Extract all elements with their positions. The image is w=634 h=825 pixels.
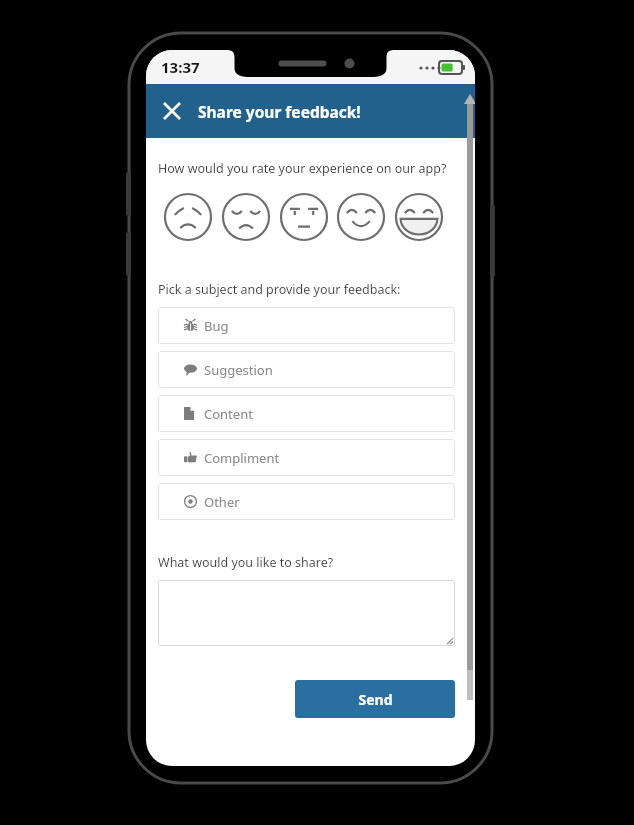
staticText: Suggestion (204, 361, 273, 379)
staticText: Content (204, 405, 253, 423)
button[interactable]: Happy (335, 191, 387, 243)
button[interactable]: Very happy (393, 191, 445, 243)
button[interactable]: Content (158, 395, 455, 432)
button[interactable]: Feedback text field (158, 580, 455, 646)
staticText: Pick a subject and provide your feedback… (158, 281, 401, 298)
staticText: What would you like to share? (158, 554, 334, 571)
button[interactable]: Unhappy (220, 191, 272, 243)
button[interactable]: Send (295, 680, 455, 718)
button[interactable]: Compliment (158, 439, 455, 476)
staticText: 13:37 (161, 57, 200, 77)
staticText: Send (358, 690, 393, 709)
staticText: Share your feedback! (198, 101, 361, 122)
button[interactable]: Other (158, 483, 455, 520)
button[interactable]: Close (154, 93, 190, 129)
button[interactable]: Neutral (278, 191, 330, 243)
staticText: How would you rate your experience on ou… (158, 160, 447, 177)
button[interactable]: Suggestion (158, 351, 455, 388)
staticText: Other (204, 493, 240, 511)
button[interactable]: Very unhappy (162, 191, 214, 243)
staticText: Compliment (204, 449, 280, 467)
staticText: Bug (204, 317, 229, 335)
button[interactable]: Bug (158, 307, 455, 344)
